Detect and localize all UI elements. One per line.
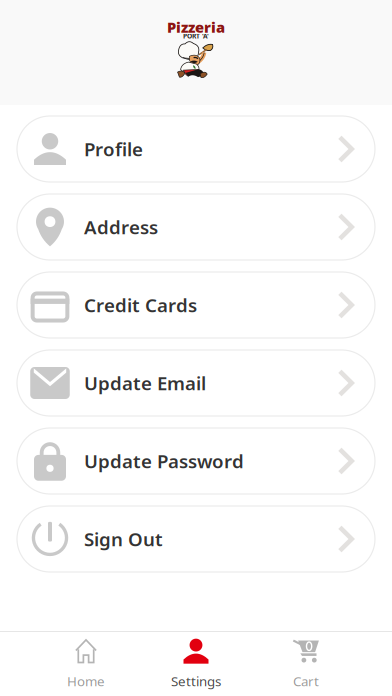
staticText: Pizzeria (167, 17, 225, 37)
staticText: Update Password (84, 449, 244, 473)
staticText: PORT 'A' (183, 32, 209, 40)
staticText: Settings (171, 672, 221, 690)
button[interactable]: Home (31, 632, 141, 696)
staticText: Credit Cards (84, 293, 197, 317)
button[interactable]: Address (17, 194, 375, 260)
staticText: Update Email (84, 371, 206, 395)
staticText: Home (67, 672, 105, 690)
staticText: Profile (84, 137, 143, 161)
staticText: Cart (293, 672, 319, 690)
button[interactable]: Cart (251, 632, 361, 696)
button[interactable]: Settings (141, 632, 251, 696)
button[interactable]: Credit Cards (17, 272, 375, 338)
staticText: Sign Out (84, 527, 163, 551)
button[interactable]: Update Password (17, 428, 375, 494)
button[interactable]: Sign Out (17, 506, 375, 572)
staticText: Address (84, 215, 158, 239)
button[interactable]: Update Email (17, 350, 375, 416)
button[interactable]: Profile (17, 116, 375, 182)
